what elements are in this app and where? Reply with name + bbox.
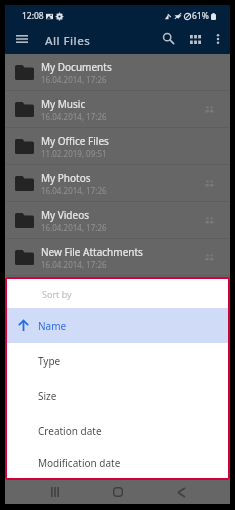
button[interactable]: Size bbox=[7, 378, 228, 413]
button[interactable]: Search bbox=[156, 26, 180, 50]
staticText: Sort by bbox=[42, 288, 72, 300]
button[interactable]: Modification date bbox=[7, 448, 228, 478]
staticText: My Office Files bbox=[41, 134, 109, 148]
button[interactable]: Name bbox=[7, 308, 228, 343]
staticText: 16.04.2014, 17:26 bbox=[41, 259, 107, 270]
button[interactable]: My Music bbox=[5, 91, 230, 128]
button[interactable]: My Office Files bbox=[5, 128, 230, 165]
button[interactable]: Creation date bbox=[7, 413, 228, 448]
staticText: 16.04.2014, 17:26 bbox=[41, 74, 107, 85]
button[interactable]: Home bbox=[97, 480, 138, 504]
staticText: 16.04.2014, 17:26 bbox=[41, 185, 107, 196]
staticText: New File Attachments bbox=[41, 245, 143, 259]
staticText: 16.04.2014, 17:26 bbox=[41, 222, 107, 233]
staticText: 61% bbox=[192, 10, 209, 22]
staticText: Modification date bbox=[38, 456, 121, 470]
staticText: My Music bbox=[41, 97, 86, 111]
staticText: My Documents bbox=[41, 60, 112, 74]
staticText: 16.04.2014, 17:26 bbox=[41, 111, 107, 122]
button[interactable]: More options bbox=[206, 27, 230, 51]
button[interactable]: My Documents bbox=[5, 54, 230, 91]
staticText: My Videos bbox=[41, 208, 89, 222]
button[interactable]: Back bbox=[161, 480, 202, 504]
button[interactable]: My Videos bbox=[5, 202, 230, 239]
button[interactable]: Menu bbox=[9, 26, 34, 51]
staticText: All Files bbox=[45, 33, 91, 49]
button[interactable]: New File Attachments bbox=[5, 239, 230, 276]
staticText: 11.02.2019, 09:51 bbox=[41, 148, 107, 159]
button[interactable]: My Photos bbox=[5, 165, 230, 202]
staticText: Type bbox=[38, 354, 61, 368]
button[interactable]: Type bbox=[7, 343, 228, 378]
staticText: My Photos bbox=[41, 171, 91, 185]
staticText: Size bbox=[38, 389, 57, 403]
button[interactable]: Recent apps bbox=[34, 480, 75, 504]
button[interactable]: Grid view bbox=[183, 27, 207, 51]
staticText: Creation date bbox=[38, 424, 102, 438]
staticText: Name bbox=[38, 319, 67, 333]
staticText: 12:08 bbox=[22, 10, 44, 22]
